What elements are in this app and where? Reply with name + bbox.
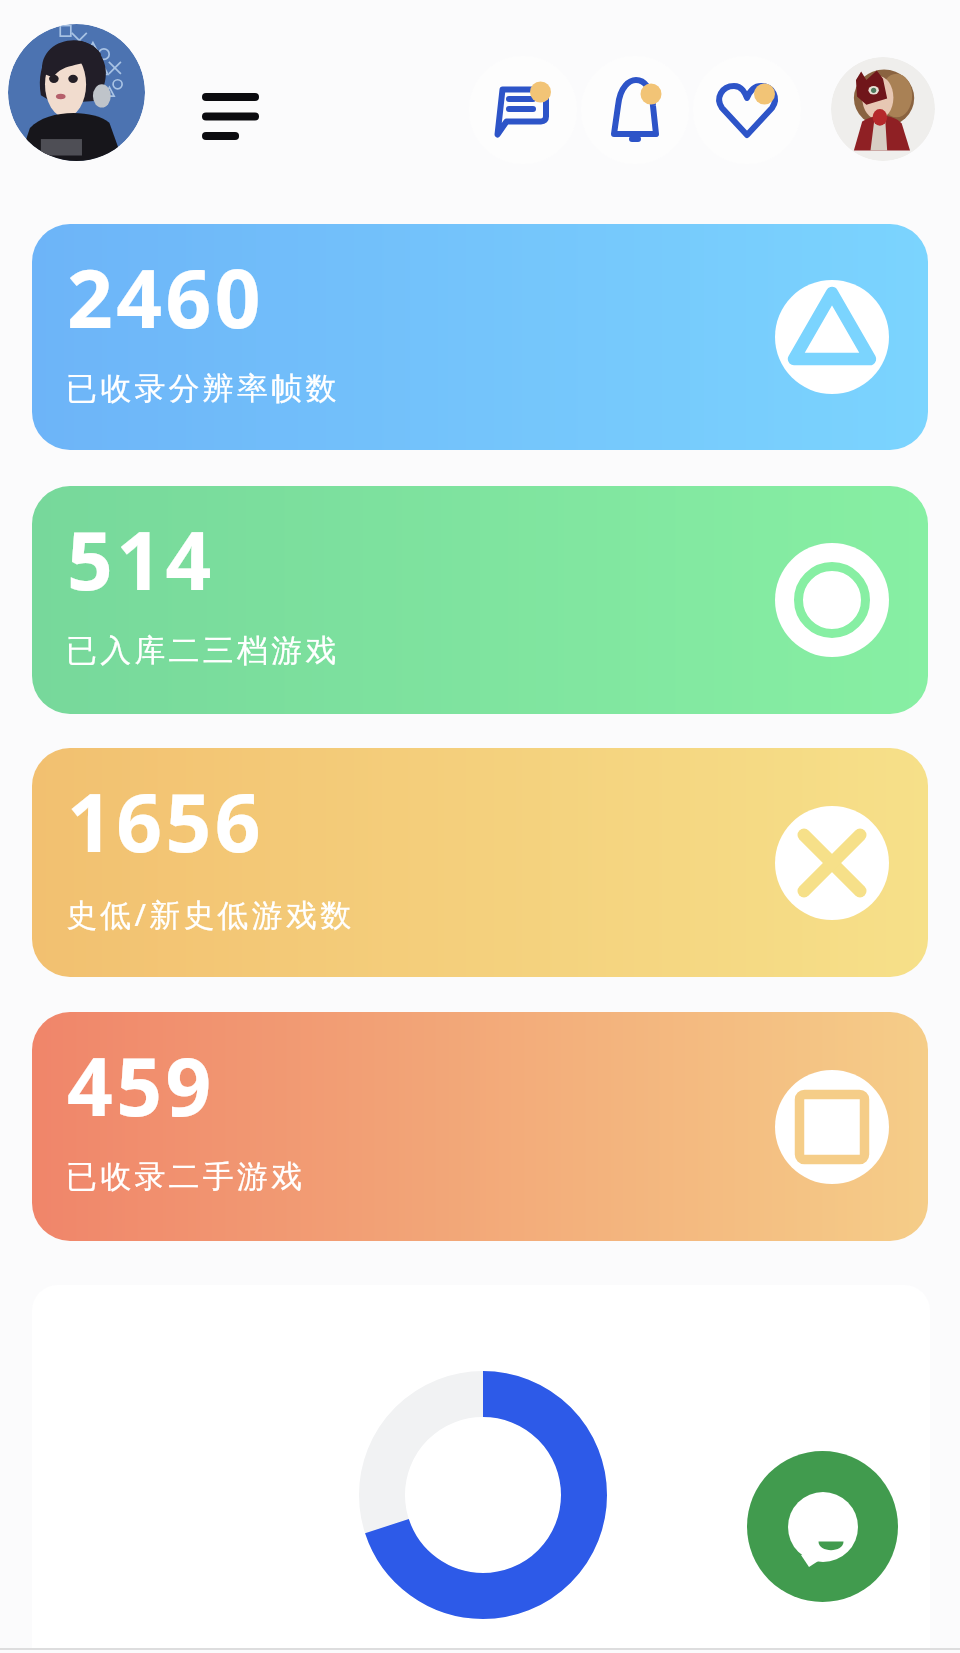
button[interactable]: 459 [32,1012,928,1241]
staticText: 已入库二三档游戏 [66,631,340,670]
staticText: 已收录二手游戏 [66,1157,306,1196]
button[interactable]: Notifications [581,56,689,164]
staticText: 史低/新史低游戏数 [66,893,355,935]
staticText: 1656 [67,766,265,875]
staticText: 已收录分辨率帧数 [66,369,340,408]
staticText: 459 [67,1030,215,1139]
button[interactable]: Menu [182,75,279,155]
button[interactable]: 2460 [32,224,928,450]
button[interactable]: Profile [8,24,145,161]
button[interactable]: 1656 [32,748,928,977]
button[interactable]: Chat [747,1451,898,1602]
button[interactable]: Favorites [693,56,801,164]
staticText: 2460 [67,242,265,351]
button[interactable]: Messages [469,56,577,164]
button[interactable]: 514 [32,486,928,714]
button[interactable]: Account [831,57,935,161]
staticText: 514 [67,504,215,613]
